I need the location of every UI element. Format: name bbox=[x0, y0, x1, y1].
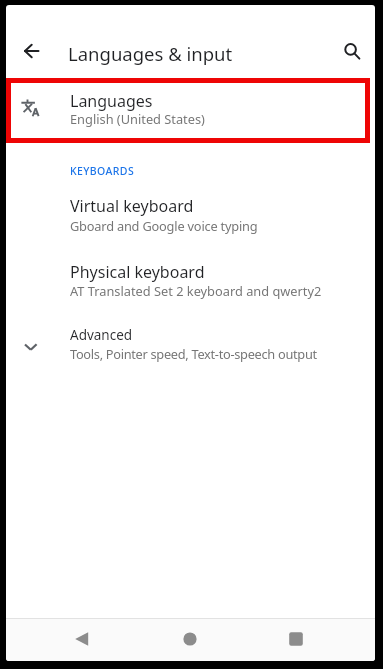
staticText: Virtual keyboard bbox=[70, 195, 194, 217]
staticText: Advanced bbox=[70, 326, 133, 344]
button[interactable] bbox=[6, 78, 370, 143]
button[interactable] bbox=[339, 38, 361, 60]
staticText: KEYBOARDS bbox=[70, 164, 135, 178]
staticText: Gboard and Google voice typing bbox=[70, 217, 258, 234]
button[interactable] bbox=[282, 625, 310, 653]
staticText: AT Translated Set 2 keyboard and qwerty2 bbox=[70, 282, 322, 299]
staticText: Tools, Pointer speed, Text-to-speech out… bbox=[70, 345, 317, 362]
button[interactable] bbox=[21, 40, 43, 62]
button[interactable] bbox=[6, 320, 375, 378]
staticText: Languages bbox=[70, 90, 153, 112]
button[interactable] bbox=[176, 625, 204, 653]
staticText: Physical keyboard bbox=[70, 261, 205, 283]
button[interactable] bbox=[6, 254, 375, 314]
button[interactable] bbox=[68, 625, 96, 653]
button[interactable] bbox=[6, 188, 375, 248]
staticText: Languages & input bbox=[68, 41, 233, 66]
staticText: English (United States) bbox=[70, 110, 205, 127]
